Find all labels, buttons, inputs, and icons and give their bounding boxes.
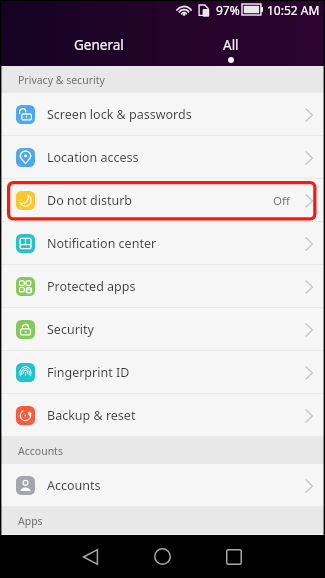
button[interactable]: Back <box>54 535 126 578</box>
button[interactable]: Accounts <box>0 464 325 507</box>
staticText: Fingerprint ID <box>47 364 130 381</box>
staticText: Do not disturb <box>47 192 132 209</box>
button[interactable]: Notification center <box>0 222 325 265</box>
staticText: Accounts <box>18 444 63 458</box>
button[interactable]: Do not disturb <box>0 179 325 222</box>
button[interactable]: Fingerprint ID <box>0 351 325 394</box>
staticText: All <box>223 36 239 54</box>
staticText: Notification center <box>47 235 157 252</box>
button[interactable]: Backup & reset <box>0 394 325 437</box>
staticText: 97% <box>216 2 240 18</box>
button[interactable]: General <box>33 20 165 66</box>
staticText: Screen lock & passwords <box>47 106 192 123</box>
button[interactable]: Location access <box>0 136 325 179</box>
button[interactable]: All <box>165 20 297 66</box>
staticText: Protected apps <box>47 278 136 295</box>
staticText: 10:52 AM <box>267 2 320 18</box>
button[interactable]: Recents <box>198 535 270 578</box>
button[interactable]: Screen lock & passwords <box>0 93 325 136</box>
staticText: Location access <box>47 149 139 166</box>
button[interactable]: Home <box>126 535 198 578</box>
staticText: Accounts <box>47 477 101 494</box>
staticText: Backup & reset <box>47 407 136 424</box>
staticText: Privacy & security <box>18 73 105 87</box>
staticText: Off <box>273 193 290 209</box>
button[interactable]: Security <box>0 308 325 351</box>
staticText: Security <box>47 321 94 338</box>
staticText: General <box>74 36 124 54</box>
button[interactable]: Protected apps <box>0 265 325 308</box>
staticText: Apps <box>18 514 43 528</box>
